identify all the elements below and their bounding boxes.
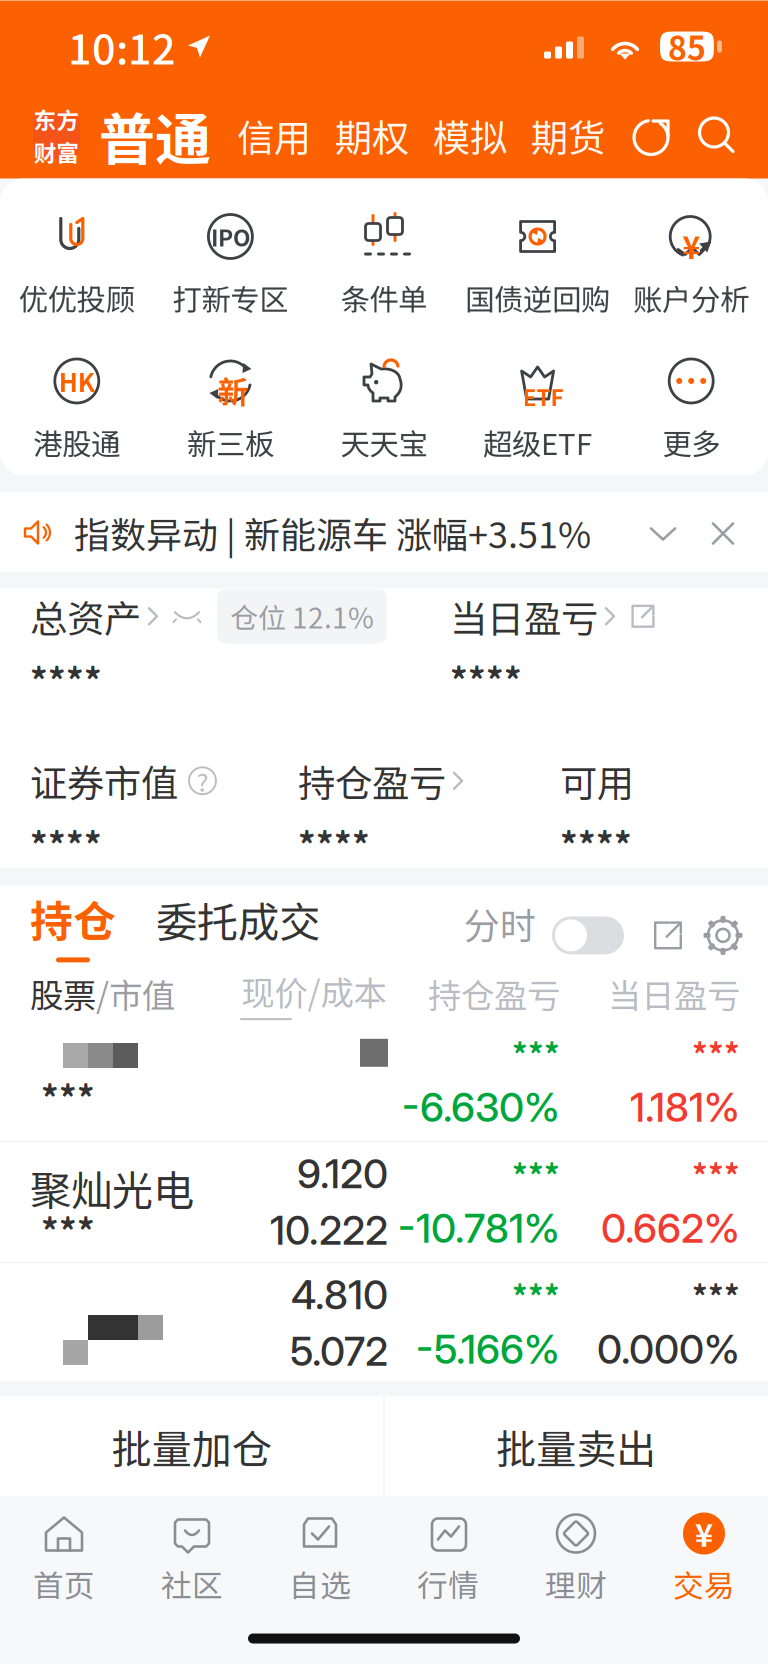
staticText: 新三板 <box>187 421 274 463</box>
staticText: 持仓盈亏 <box>428 969 560 1018</box>
button[interactable]: 展开 <box>643 512 683 552</box>
staticText: 优优投顾 <box>19 276 135 319</box>
button[interactable]: 首页 <box>0 1510 128 1606</box>
staticText: 财富 <box>33 135 79 168</box>
staticText: *** <box>41 1071 95 1121</box>
staticText: ETF <box>523 380 564 413</box>
button[interactable]: ETF <box>461 355 614 463</box>
staticText: 5.072 <box>290 1327 388 1375</box>
staticText: 国债逆回购 <box>465 276 610 319</box>
button[interactable]: 分时开关 <box>536 916 624 962</box>
button[interactable]: 新 <box>154 355 307 463</box>
staticText: 仓位 12.1% <box>230 596 374 636</box>
button[interactable]: 理财 <box>512 1510 640 1606</box>
button[interactable]: 自选 <box>256 1510 384 1606</box>
staticText: 新 <box>217 368 248 412</box>
staticText: 首页 <box>33 1561 95 1606</box>
button[interactable]: 条件单 <box>307 210 461 319</box>
button[interactable]: 设置 <box>684 916 742 962</box>
staticText: 期权 <box>335 108 409 163</box>
staticText: 更多 <box>662 421 720 463</box>
staticText: *** <box>512 1273 560 1317</box>
button[interactable]: 搜索 <box>672 114 738 156</box>
staticText: *** <box>692 1152 740 1196</box>
staticText: 10:12 <box>68 17 176 76</box>
staticText: ? <box>196 762 208 799</box>
staticText: 指数异动 | 新能源车 涨幅+3.51% <box>74 506 591 558</box>
staticText: 信用 <box>237 108 311 163</box>
staticText: 当日盈亏 <box>450 589 598 643</box>
staticText: *** <box>512 1031 560 1075</box>
staticText: 港股通 <box>33 421 120 463</box>
staticText: *** <box>512 1152 560 1196</box>
button[interactable]: 期货 <box>507 108 605 163</box>
staticText: 期货 <box>531 108 605 163</box>
button[interactable]: 优优投顾 <box>0 210 154 319</box>
staticText: 条件单 <box>340 276 427 319</box>
button[interactable]: 持仓 <box>30 888 116 962</box>
staticText: *** <box>692 1273 740 1317</box>
staticText: 天天宝 <box>340 421 427 463</box>
staticText: 0.000% <box>597 1325 740 1373</box>
button[interactable]: 模拟 <box>409 108 507 163</box>
button[interactable]: 批量加仓 <box>0 1396 383 1496</box>
staticText: 证券市值 <box>30 754 178 808</box>
staticText: 模拟 <box>433 108 507 163</box>
staticText: /成本 <box>307 967 386 1015</box>
staticText: **** <box>30 653 102 704</box>
staticText: ¥ <box>682 223 700 268</box>
staticText: -10.781% <box>398 1204 560 1252</box>
staticText: ¥ <box>695 1511 713 1556</box>
staticText: HK <box>59 363 95 399</box>
staticText: 聚灿光电 <box>30 1158 194 1218</box>
button[interactable]: 社区 <box>128 1510 256 1606</box>
staticText: *** <box>41 1204 95 1254</box>
staticText: 持仓盈亏 <box>298 754 446 808</box>
staticText: 交易 <box>673 1561 735 1606</box>
staticText: -6.630% <box>402 1083 560 1131</box>
button[interactable]: 更多 <box>614 355 768 463</box>
staticText: 总资产 <box>30 589 141 643</box>
button[interactable]: 4.810 <box>0 1263 768 1383</box>
button[interactable]: 批量卖出 <box>384 1396 768 1496</box>
staticText: **** <box>30 818 102 868</box>
staticText: 自选 <box>289 1561 351 1606</box>
staticText: -5.166% <box>416 1325 560 1373</box>
staticText: 当日盈亏 <box>608 969 740 1018</box>
button[interactable]: 行情 <box>384 1510 512 1606</box>
button[interactable]: 期权 <box>311 108 409 163</box>
staticText: 理财 <box>545 1561 607 1606</box>
button[interactable]: ¥ <box>640 1510 768 1606</box>
button[interactable]: 天天宝 <box>307 355 461 463</box>
staticText: 现价 <box>241 967 307 1015</box>
staticText: 1.181% <box>630 1083 740 1131</box>
button[interactable]: 关闭 <box>683 512 743 552</box>
staticText: 行情 <box>417 1561 479 1606</box>
staticText: *** <box>692 1031 740 1075</box>
button[interactable]: 分享 <box>624 919 684 962</box>
staticText: 9.120 <box>297 1150 388 1198</box>
staticText: **** <box>560 818 632 868</box>
button[interactable]: *** <box>0 1021 768 1141</box>
staticText: 0.662% <box>601 1204 740 1252</box>
staticText: 可用 <box>560 754 634 808</box>
button[interactable]: IPO <box>154 210 307 319</box>
staticText: 账户分析 <box>633 276 749 319</box>
button[interactable]: 委托成交 <box>116 889 320 962</box>
button[interactable]: 国债逆回购 <box>461 210 614 319</box>
staticText: IPO <box>211 220 250 253</box>
staticText: 委托成交 <box>156 889 320 949</box>
button[interactable]: 普通 <box>80 95 211 176</box>
staticText: 批量卖出 <box>496 1417 656 1475</box>
button[interactable]: HK <box>0 355 154 463</box>
button[interactable]: 东方财富 <box>33 112 80 159</box>
staticText: /市值 <box>96 969 175 1018</box>
staticText: 分时 <box>464 897 536 949</box>
button[interactable]: 刷新 <box>630 114 672 156</box>
button[interactable]: ¥ <box>614 210 768 319</box>
staticText: 社区 <box>161 1561 223 1606</box>
button[interactable]: 聚灿光电 <box>0 1142 768 1262</box>
staticText: 10.222 <box>270 1206 388 1254</box>
button[interactable]: 信用 <box>211 108 311 163</box>
staticText: 普通 <box>99 95 211 176</box>
